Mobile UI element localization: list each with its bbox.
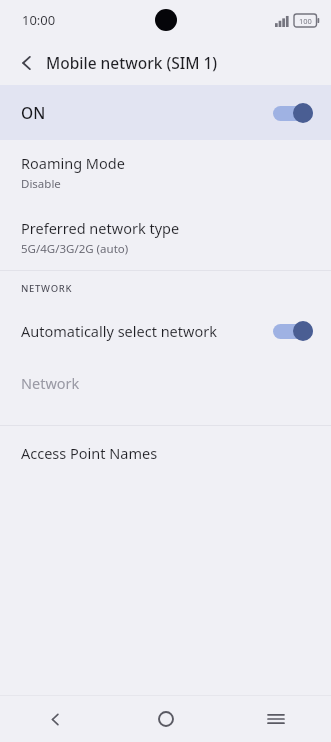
button[interactable]: Home (111, 696, 221, 742)
staticText: ON (21, 102, 273, 123)
staticText: 10:00 (22, 11, 56, 29)
staticText: 100 (299, 16, 312, 26)
staticText: Disable (21, 176, 61, 192)
staticText: Preferred network type (21, 218, 180, 238)
staticText: Access Point Names (21, 443, 158, 463)
button[interactable]: Preferred network type (0, 205, 331, 270)
button[interactable]: Automatically select network (0, 305, 331, 357)
staticText: Roaming Mode (21, 153, 125, 173)
staticText: Network (21, 373, 80, 393)
staticText: Mobile network (SIM 1) (46, 52, 218, 73)
button[interactable]: Roaming Mode (0, 140, 331, 205)
button[interactable]: Back (0, 696, 111, 742)
staticText: 5G/4G/3G/2G (auto) (21, 241, 129, 257)
staticText: Automatically select network (21, 321, 273, 341)
staticText: NETWORK (21, 282, 73, 295)
button[interactable]: Access Point Names (0, 426, 331, 480)
button[interactable]: Recent apps (221, 696, 331, 742)
button[interactable]: ON (0, 85, 331, 140)
button[interactable]: Back (10, 46, 44, 80)
